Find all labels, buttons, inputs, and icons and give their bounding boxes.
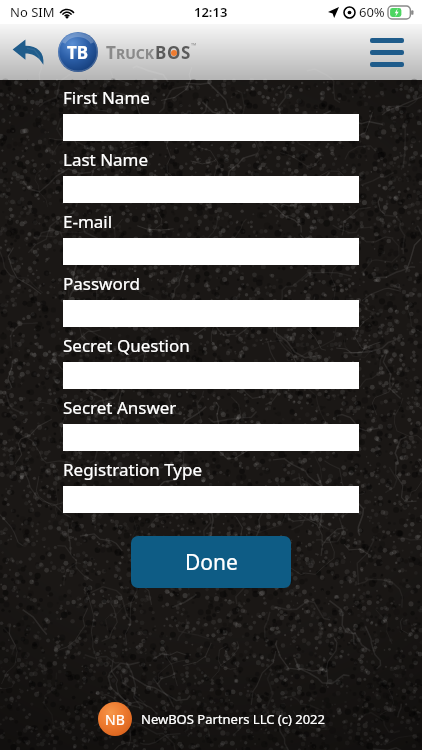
staticText: Last Name	[63, 148, 149, 171]
staticText: Registration Type	[63, 458, 203, 481]
staticText: Done	[185, 548, 238, 577]
staticText: First Name	[63, 86, 150, 109]
staticText: NB	[105, 710, 125, 729]
staticText: ™	[191, 41, 197, 51]
staticText: S	[181, 41, 191, 64]
staticText: 12:13	[194, 3, 228, 21]
button[interactable]: Back	[6, 30, 50, 74]
staticText: B	[155, 41, 167, 64]
staticText: T	[106, 41, 116, 64]
staticText: RUCK	[116, 44, 155, 63]
staticText: Password	[63, 272, 140, 295]
staticText: NewBOS Partners LLC (c) 2022	[141, 710, 325, 728]
staticText: E-mail	[63, 210, 113, 233]
staticText: Secret Question	[63, 334, 190, 357]
staticText: Secret Answer	[63, 396, 177, 419]
staticText: 60%	[359, 3, 385, 21]
button[interactable]: Done	[131, 536, 291, 588]
staticText: O	[167, 41, 181, 64]
staticText: No SIM	[10, 3, 55, 21]
button[interactable]: Menu	[364, 29, 410, 75]
staticText: TB	[67, 41, 89, 64]
